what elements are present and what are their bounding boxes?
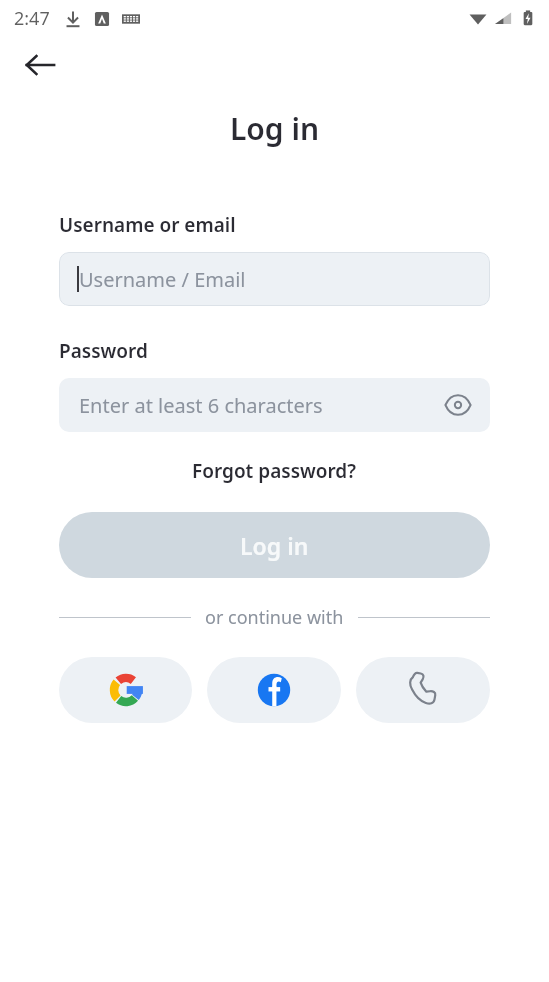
staticText: 2:47: [14, 6, 50, 31]
staticText: or continue with: [205, 605, 344, 629]
button[interactable]: Sign in with Google: [59, 657, 192, 723]
staticText: Log in: [0, 108, 549, 149]
staticText: Username / Email: [79, 266, 246, 293]
staticText: Password: [59, 338, 148, 364]
staticText: Enter at least 6 characters: [79, 392, 442, 419]
button[interactable]: Forgot password?: [186, 456, 363, 486]
button[interactable]: Back: [16, 41, 64, 89]
button[interactable]: Log in: [59, 512, 490, 578]
staticText: Username or email: [59, 212, 236, 238]
staticText: Forgot password?: [192, 458, 357, 484]
button[interactable]: Sign in with Facebook: [207, 657, 341, 723]
staticText: Log in: [240, 530, 309, 561]
button[interactable]: Sign in with phone number: [356, 657, 490, 723]
button[interactable]: Username / Email: [59, 252, 490, 306]
button[interactable]: Enter at least 6 characters: [59, 378, 490, 432]
button[interactable]: Show password: [442, 389, 474, 421]
